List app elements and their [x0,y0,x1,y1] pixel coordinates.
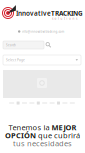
staticText: InnovativeTRACKING [16,9,83,18]
staticText: Select Page [6,58,25,62]
button[interactable]: InnovativeTRACKING [16,9,83,18]
button[interactable]: Search [3,41,44,49]
button[interactable]: Select Page [3,55,81,65]
button[interactable]: info@innovativetracking.com [18,29,65,33]
button[interactable]: Search [46,42,51,47]
staticText: Tenemos la MEJOR [8,122,76,132]
staticText: OPCIÓN que cubrirá [5,130,80,140]
staticText: info@innovativetracking.com [22,29,65,33]
staticText: tus necesidades [13,138,72,148]
staticText: Search [6,43,16,47]
staticText: solutions [52,16,77,20]
